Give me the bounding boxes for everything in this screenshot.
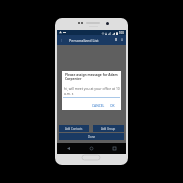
staticText: Personalized List <box>69 38 99 43</box>
button[interactable]: Recent apps <box>103 143 126 153</box>
staticText: 100 <box>119 31 124 35</box>
button[interactable]: Home <box>80 143 103 153</box>
staticText: Add Contacts <box>65 127 83 131</box>
button[interactable]: Done <box>59 133 124 140</box>
button[interactable]: Back <box>57 143 80 153</box>
button[interactable]: Navigate up <box>59 38 64 43</box>
staticText: hi, will meet you at your office at 10 a… <box>64 86 120 96</box>
button[interactable]: Home <box>120 37 124 41</box>
staticText: Done <box>88 135 96 139</box>
button[interactable]: Add Group <box>93 125 124 132</box>
button[interactable]: Notifications <box>114 37 118 41</box>
button[interactable]: CANCEL <box>92 103 105 107</box>
staticText: Please assign message for Adam Carpenter <box>65 73 119 81</box>
button[interactable]: OK <box>110 103 115 107</box>
staticText: Add Group <box>101 127 116 131</box>
button[interactable]: Add Contacts <box>59 125 89 132</box>
